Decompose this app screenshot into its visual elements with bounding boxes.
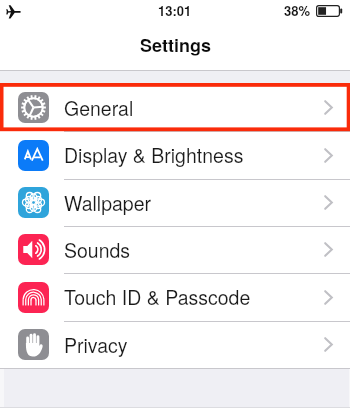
button[interactable]: General [0, 84, 350, 131]
staticText: Display & Brightness [64, 141, 244, 169]
button[interactable]: Display & Brightness [0, 131, 350, 179]
staticText: Sounds [64, 236, 131, 264]
staticText: General [64, 94, 134, 122]
staticText: 38% [284, 1, 311, 20]
staticText: 13:01 [158, 1, 192, 20]
other: Airplane mode [6, 4, 21, 19]
button[interactable]: Privacy [0, 321, 350, 368]
staticText: Touch ID & Passcode [64, 283, 251, 311]
button[interactable]: Touch ID & Passcode [0, 273, 350, 321]
staticText: Settings [140, 32, 211, 58]
staticText: Privacy [64, 331, 128, 359]
staticText: Wallpaper [64, 189, 151, 217]
button[interactable]: Wallpaper [0, 179, 350, 226]
button[interactable]: Sounds [0, 226, 350, 273]
